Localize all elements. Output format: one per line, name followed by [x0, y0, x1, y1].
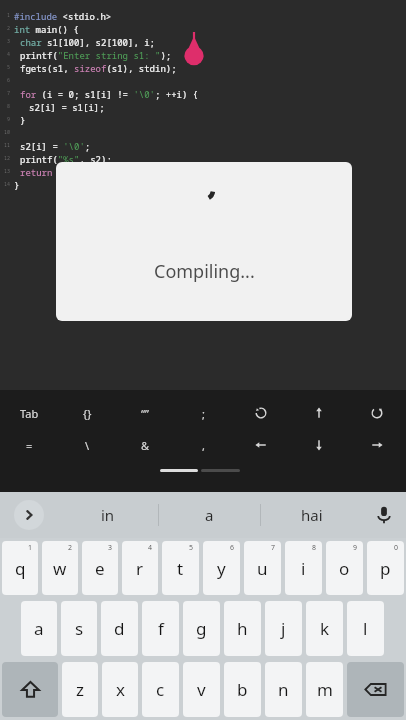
- staticText: hai: [301, 505, 323, 525]
- button[interactable]: y: [203, 541, 240, 595]
- button[interactable]: in: [58, 492, 158, 538]
- button[interactable]: b: [224, 662, 261, 717]
- staticText: 4: [148, 543, 153, 553]
- staticText: 7: [271, 543, 276, 553]
- button[interactable]: z: [62, 662, 98, 717]
- staticText: char s1[100], s2[100], i;: [20, 36, 156, 48]
- button[interactable]: n: [265, 662, 302, 717]
- staticText: for (i = 0; s1[i] != '\0'; ++i) {: [20, 88, 199, 100]
- button[interactable]: ;: [174, 398, 232, 428]
- button[interactable]: Move up: [290, 398, 348, 428]
- staticText: }: [14, 179, 20, 191]
- button[interactable]: hai: [261, 492, 362, 538]
- staticText: r: [136, 557, 144, 580]
- staticText: o: [339, 557, 350, 580]
- button[interactable]: a: [21, 601, 57, 656]
- staticText: {}: [83, 406, 92, 421]
- staticText: a: [34, 617, 44, 640]
- button[interactable]: &: [116, 428, 174, 462]
- staticText: k: [320, 617, 330, 640]
- button[interactable]: Compiling...: [56, 162, 352, 321]
- button[interactable]: Shift: [2, 662, 58, 717]
- staticText: fgets(s1, sizeof(s1), stdin);: [20, 62, 177, 74]
- staticText: 12: [4, 155, 11, 162]
- button[interactable]: k: [306, 601, 343, 656]
- staticText: b: [237, 678, 248, 701]
- staticText: f: [158, 617, 164, 640]
- staticText: 2: [68, 543, 73, 553]
- staticText: 3: [7, 38, 11, 45]
- staticText: “”: [141, 406, 149, 421]
- button[interactable]: More suggestions: [14, 500, 44, 530]
- staticText: 2: [7, 25, 11, 32]
- staticText: return 0;: [20, 166, 69, 178]
- staticText: 14: [4, 181, 11, 188]
- staticText: 10: [4, 129, 11, 136]
- staticText: e: [95, 557, 105, 580]
- button[interactable]: u: [244, 541, 281, 595]
- staticText: 13: [4, 168, 11, 175]
- button[interactable]: v: [183, 662, 220, 717]
- button[interactable]: Backspace: [347, 662, 404, 717]
- staticText: =: [26, 438, 33, 453]
- staticText: Compiling...: [154, 259, 255, 284]
- button[interactable]: Move down: [290, 428, 348, 462]
- staticText: printf("Enter string s1: ");: [20, 49, 172, 61]
- staticText: 1: [28, 543, 33, 553]
- button[interactable]: l: [347, 601, 384, 656]
- staticText: q: [15, 557, 26, 580]
- button[interactable]: m: [306, 662, 343, 717]
- staticText: i: [301, 557, 306, 580]
- button[interactable]: e: [82, 541, 118, 595]
- button[interactable]: r: [122, 541, 158, 595]
- staticText: 5: [7, 64, 11, 71]
- staticText: c: [156, 678, 165, 701]
- staticText: l: [363, 617, 368, 640]
- button[interactable]: “”: [116, 398, 174, 428]
- staticText: w: [53, 557, 67, 580]
- button[interactable]: o: [326, 541, 363, 595]
- button[interactable]: j: [265, 601, 302, 656]
- button[interactable]: Tab: [0, 398, 58, 428]
- staticText: s: [75, 617, 84, 640]
- button[interactable]: p: [367, 541, 404, 595]
- button[interactable]: Redo: [348, 398, 406, 428]
- button[interactable]: c: [142, 662, 179, 717]
- button[interactable]: {}: [58, 398, 116, 428]
- button[interactable]: t: [162, 541, 199, 595]
- staticText: printf("%s", s2);: [20, 153, 112, 165]
- button[interactable]: d: [101, 601, 138, 656]
- button[interactable]: q: [2, 541, 38, 595]
- button[interactable]: a: [159, 492, 260, 538]
- button[interactable]: Voice input: [362, 492, 406, 538]
- button[interactable]: \: [58, 428, 116, 462]
- staticText: 5: [189, 543, 194, 553]
- staticText: ;: [202, 406, 205, 421]
- button[interactable]: i: [285, 541, 322, 595]
- button[interactable]: f: [142, 601, 179, 656]
- staticText: z: [76, 678, 84, 701]
- staticText: 9: [7, 116, 11, 123]
- button[interactable]: ,: [174, 428, 232, 462]
- staticText: 8: [7, 103, 11, 110]
- staticText: y: [217, 557, 226, 580]
- staticText: n: [278, 678, 289, 701]
- staticText: 3: [108, 543, 113, 553]
- staticText: x: [116, 678, 125, 701]
- staticText: a: [205, 505, 214, 525]
- staticText: 6: [230, 543, 235, 553]
- staticText: d: [114, 617, 125, 640]
- button[interactable]: =: [0, 428, 58, 462]
- button[interactable]: g: [183, 601, 220, 656]
- button[interactable]: x: [102, 662, 138, 717]
- button[interactable]: s: [61, 601, 97, 656]
- staticText: p: [380, 557, 391, 580]
- staticText: 0: [394, 543, 399, 553]
- button[interactable]: w: [42, 541, 78, 595]
- button[interactable]: h: [224, 601, 261, 656]
- staticText: \: [85, 438, 90, 453]
- button[interactable]: Move left: [232, 428, 290, 462]
- button[interactable]: Undo: [232, 398, 290, 428]
- staticText: g: [196, 617, 207, 640]
- button[interactable]: Move right: [348, 428, 406, 462]
